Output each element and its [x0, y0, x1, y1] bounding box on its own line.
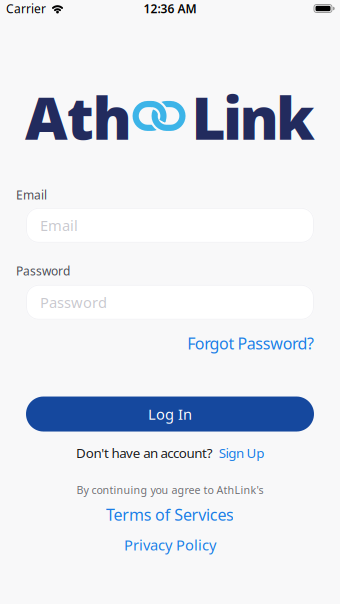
- staticText: Sign Up: [219, 444, 264, 462]
- staticText: Email: [16, 187, 47, 203]
- staticText: Ath: [25, 78, 132, 156]
- staticText: Password: [40, 292, 107, 312]
- staticText: Carrier: [6, 0, 46, 16]
- staticText: By continuing you agree to AthLink's: [76, 483, 263, 497]
- staticText: Privacy Policy: [124, 535, 216, 555]
- button[interactable]: Forgot Password?: [187, 333, 314, 354]
- button[interactable]: Terms of Services: [106, 504, 234, 525]
- staticText: 12:36 AM: [143, 0, 196, 16]
- staticText: Terms of Services: [106, 504, 234, 525]
- staticText: Link: [191, 78, 315, 156]
- staticText: Log In: [148, 404, 192, 424]
- button[interactable]: Privacy Policy: [124, 535, 216, 555]
- staticText: Don't have an account?: [76, 444, 213, 462]
- staticText: Forgot Password?: [187, 333, 314, 354]
- button[interactable]: Log In: [26, 396, 314, 431]
- staticText: Password: [16, 263, 70, 279]
- staticText: Email: [40, 216, 78, 235]
- button[interactable]: Sign Up: [219, 444, 264, 462]
